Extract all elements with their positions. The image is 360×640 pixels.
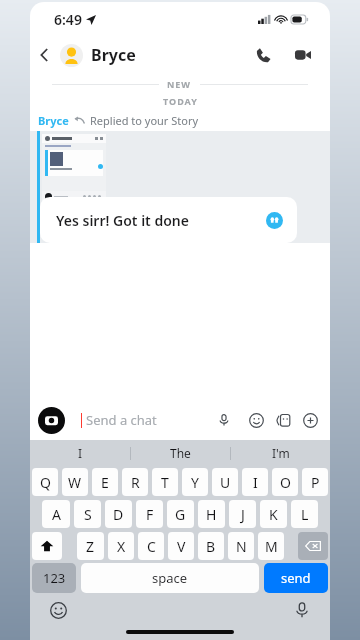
staticText: I: [78, 445, 83, 461]
staticText: E: [101, 473, 109, 492]
staticText: O: [280, 473, 291, 492]
button[interactable]: [42, 134, 106, 216]
button[interactable]: Camera: [38, 407, 65, 434]
button[interactable]: Backspace: [298, 532, 328, 560]
button[interactable]: J: [229, 500, 256, 528]
staticText: Z: [86, 537, 95, 556]
staticText: TODAY: [163, 95, 198, 107]
button[interactable]: U: [212, 468, 238, 496]
button[interactable]: G: [167, 500, 194, 528]
button[interactable]: B: [198, 532, 224, 560]
staticText: Yes sirr! Got it done: [56, 211, 189, 230]
button[interactable]: O: [272, 468, 298, 496]
staticText: U: [220, 473, 231, 492]
button[interactable]: [60, 44, 83, 67]
button[interactable]: I: [30, 440, 130, 466]
button[interactable]: Video call: [290, 42, 316, 68]
staticText: Y: [191, 473, 199, 492]
button[interactable]: Y: [182, 468, 208, 496]
staticText: N: [236, 537, 247, 556]
staticText: D: [113, 505, 124, 524]
button[interactable]: C: [138, 532, 164, 560]
button[interactable]: send: [264, 563, 328, 593]
button[interactable]: 123: [32, 563, 76, 593]
staticText: A: [52, 505, 61, 524]
button[interactable]: K: [260, 500, 287, 528]
button[interactable]: Q: [32, 468, 58, 496]
button[interactable]: F: [136, 500, 163, 528]
staticText: F: [146, 505, 154, 524]
button[interactable]: space: [81, 563, 259, 593]
button[interactable]: H: [198, 500, 225, 528]
button[interactable]: R: [122, 468, 148, 496]
staticText: L: [301, 505, 309, 524]
button[interactable]: Emoji: [244, 408, 268, 432]
staticText: H: [206, 505, 217, 524]
staticText: 6:49: [54, 10, 82, 29]
staticText: G: [175, 505, 186, 524]
staticText: The: [170, 445, 191, 461]
staticText: send: [281, 569, 311, 587]
button[interactable]: Stickers: [271, 408, 295, 432]
staticText: C: [147, 537, 156, 556]
staticText: W: [68, 473, 82, 492]
button[interactable]: Send a chat: [72, 407, 240, 433]
button[interactable]: Dictation: [292, 600, 312, 620]
button[interactable]: T: [152, 468, 178, 496]
button[interactable]: More options: [298, 408, 322, 432]
staticText: Replied to your Story: [90, 113, 199, 128]
staticText: B: [206, 537, 216, 556]
staticText: Send a chat: [86, 411, 157, 429]
button[interactable]: I'm: [231, 440, 330, 466]
button[interactable]: E: [92, 468, 118, 496]
button[interactable]: Bryce: [91, 44, 136, 66]
button[interactable]: Z: [77, 532, 104, 560]
button[interactable]: Shift: [32, 532, 62, 560]
button[interactable]: Back: [30, 40, 60, 70]
staticText: X: [117, 537, 126, 556]
staticText: I'm: [272, 445, 290, 461]
staticText: 123: [43, 569, 66, 587]
button[interactable]: Yes sirr! Got it done: [40, 197, 297, 243]
button[interactable]: M: [258, 532, 284, 560]
button[interactable]: The: [131, 440, 230, 466]
button[interactable]: W: [62, 468, 88, 496]
button[interactable]: Emoji keyboard: [48, 600, 68, 620]
staticText: P: [311, 473, 320, 492]
staticText: I: [253, 473, 258, 492]
staticText: M: [265, 537, 278, 556]
button[interactable]: D: [105, 500, 132, 528]
staticText: Q: [40, 473, 51, 492]
button[interactable]: X: [108, 532, 134, 560]
staticText: J: [241, 505, 245, 524]
staticText: S: [84, 505, 92, 524]
staticText: Bryce: [38, 113, 69, 128]
staticText: K: [269, 505, 278, 524]
staticText: T: [161, 473, 169, 492]
button[interactable]: I: [242, 468, 268, 496]
button[interactable]: S: [74, 500, 101, 528]
staticText: V: [177, 537, 186, 556]
staticText: R: [131, 473, 140, 492]
button[interactable]: N: [228, 532, 254, 560]
button[interactable]: Call: [250, 42, 276, 68]
staticText: space: [152, 569, 188, 587]
staticText: Bryce: [91, 44, 136, 66]
button[interactable]: Voice message: [213, 409, 235, 431]
button[interactable]: L: [291, 500, 318, 528]
button[interactable]: P: [302, 468, 328, 496]
staticText: NEW: [167, 78, 192, 90]
button[interactable]: V: [168, 532, 194, 560]
button[interactable]: A: [42, 500, 70, 528]
